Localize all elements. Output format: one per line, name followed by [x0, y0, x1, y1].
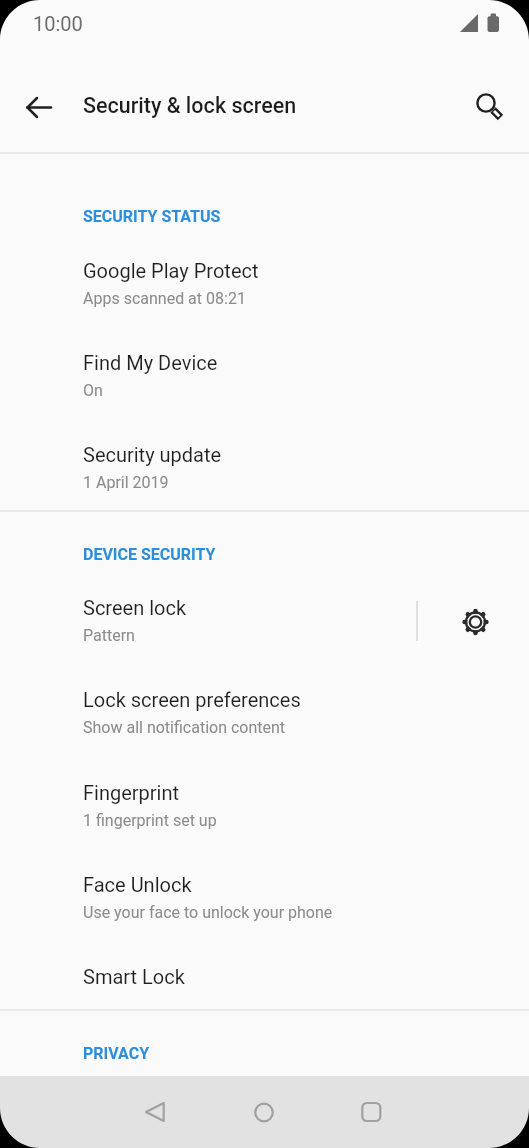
staticText: Screen lock	[83, 596, 187, 619]
staticText: Pattern	[83, 626, 135, 645]
staticText: Lock screen preferences	[83, 688, 301, 711]
staticText: 1 April 2019	[83, 473, 169, 492]
staticText: Face Unlock	[83, 873, 192, 896]
button[interactable]: Lock screen preferences	[0, 668, 529, 758]
staticText: On	[83, 381, 103, 400]
staticText: Security update	[83, 443, 222, 466]
button[interactable]	[464, 81, 510, 127]
button[interactable]: Fingerprint	[0, 761, 529, 851]
button[interactable]	[236, 1084, 292, 1140]
staticText: SECURITY STATUS	[83, 207, 221, 226]
staticText: Use your face to unlock your phone	[83, 903, 333, 922]
button[interactable]	[343, 1084, 399, 1140]
staticText: 1 fingerprint set up	[83, 811, 217, 830]
staticText: Fingerprint	[83, 781, 180, 804]
staticText: Find My Device	[83, 351, 218, 374]
button[interactable]: Security update	[0, 423, 529, 513]
staticText: PRIVACY	[83, 1044, 150, 1063]
button[interactable]: Smart Lock	[0, 945, 529, 1035]
button[interactable]: Find My Device	[0, 331, 529, 421]
staticText: Apps scanned at 08:21	[83, 289, 246, 308]
staticText: Show all notification content	[83, 718, 286, 737]
button[interactable]: Screen lock	[0, 576, 529, 666]
staticText: Security & lock screen	[83, 93, 297, 118]
button[interactable]	[453, 600, 498, 645]
staticText: Google Play Protect	[83, 259, 259, 282]
button[interactable]	[17, 85, 61, 129]
button[interactable]	[127, 1084, 183, 1140]
button[interactable]: Face Unlock	[0, 853, 529, 943]
staticText: Smart Lock	[83, 965, 185, 988]
staticText: DEVICE SECURITY	[83, 545, 216, 564]
staticText: 10:00	[33, 12, 83, 35]
button[interactable]: Google Play Protect	[0, 239, 529, 329]
